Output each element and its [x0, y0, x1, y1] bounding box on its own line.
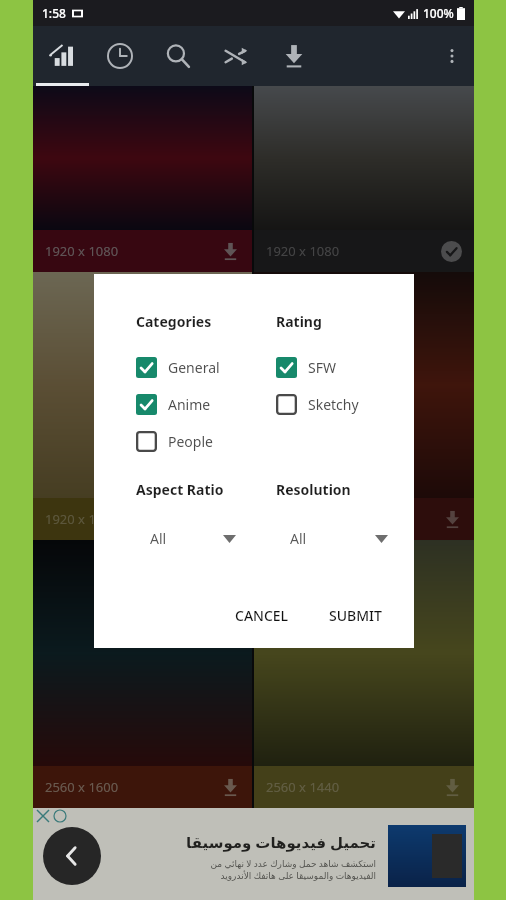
- other: Download: [221, 778, 240, 797]
- button[interactable]: Sketchy: [276, 392, 359, 417]
- other: Downloaded: [441, 241, 462, 262]
- button[interactable]: Downloads: [265, 26, 323, 86]
- other: Expand: [375, 535, 388, 543]
- staticText: People: [168, 432, 213, 451]
- staticText: 1:58: [42, 5, 66, 21]
- staticText: Sketchy: [308, 395, 359, 414]
- button[interactable]: 2560 x 1440: [254, 540, 474, 808]
- button[interactable]: Close ad: [37, 810, 49, 822]
- button[interactable]: Latest: [91, 26, 149, 86]
- button[interactable]: 1920 x 1080: [254, 86, 474, 272]
- staticText: 2560 x 1440: [266, 778, 340, 796]
- staticText: استكشف شاهد حمل وشارك عدد لا نهائي من: [210, 857, 376, 869]
- staticText: All: [150, 529, 167, 548]
- other: Expand: [223, 535, 236, 543]
- staticText: Aspect Ratio: [136, 480, 224, 499]
- button[interactable]: General: [136, 355, 220, 380]
- button[interactable]: Search: [149, 26, 207, 86]
- button[interactable]: Trending: [33, 26, 91, 86]
- staticText: 1920 x 1080: [45, 510, 119, 528]
- staticText: 1920 x 1080: [45, 242, 119, 260]
- button[interactable]: More options: [430, 34, 474, 78]
- button[interactable]: Random: [207, 26, 265, 86]
- button[interactable]: 1920 x 1080: [254, 272, 474, 540]
- button[interactable]: CANCEL: [225, 597, 299, 634]
- staticText: Categories: [136, 312, 212, 331]
- button[interactable]: Ad: [388, 825, 466, 887]
- staticText: General: [168, 358, 220, 377]
- button[interactable]: People: [136, 429, 213, 454]
- other: Download: [443, 778, 462, 797]
- other: Download: [443, 510, 462, 529]
- staticText: 1920 x 1080: [266, 242, 340, 260]
- button[interactable]: 1920 x 1080: [33, 86, 252, 272]
- staticText: Rating: [276, 312, 322, 331]
- button[interactable]: All: [276, 529, 396, 548]
- other: Download: [221, 242, 240, 261]
- staticText: SUBMIT: [329, 606, 382, 625]
- button[interactable]: Anime: [136, 392, 211, 417]
- staticText: تحميل فيديوهات وموسيقا: [186, 832, 376, 852]
- staticText: Resolution: [276, 480, 351, 499]
- staticText: الفيديوهات والموسيقا على هاتفك الأندرويد: [220, 869, 376, 881]
- button[interactable]: Back: [43, 827, 101, 885]
- staticText: All: [290, 529, 307, 548]
- button[interactable]: SFW: [276, 355, 336, 380]
- staticText: 100%: [423, 5, 454, 21]
- button[interactable]: 1920 x 1080: [33, 272, 252, 540]
- staticText: CANCEL: [235, 606, 289, 625]
- button[interactable]: 2560 x 1600: [33, 540, 252, 808]
- other: Ad info: [54, 810, 66, 822]
- staticText: 2560 x 1600: [45, 778, 119, 796]
- button[interactable]: SUBMIT: [319, 597, 392, 634]
- staticText: SFW: [308, 358, 336, 377]
- button[interactable]: All: [136, 529, 244, 548]
- staticText: Anime: [168, 395, 211, 414]
